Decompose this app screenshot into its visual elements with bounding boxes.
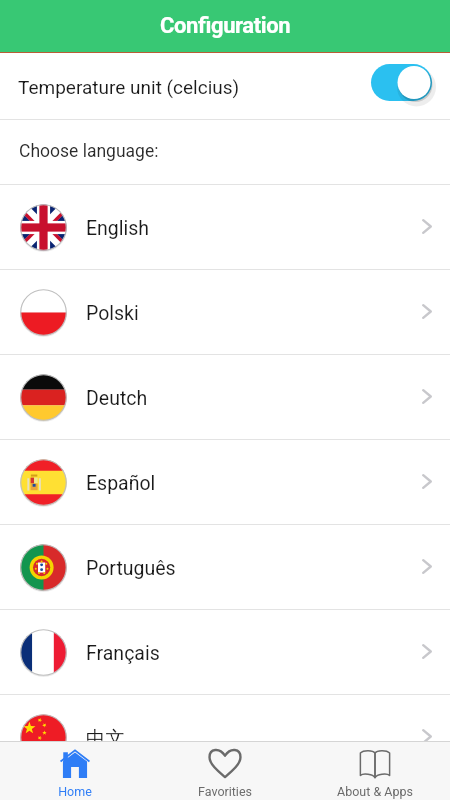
- button[interactable]: Português: [0, 525, 450, 609]
- staticText: 中文: [86, 726, 125, 751]
- staticText: Configuration: [160, 13, 291, 39]
- staticText: Favorities: [198, 784, 252, 799]
- button[interactable]: Español: [0, 440, 450, 524]
- staticText: Português: [86, 557, 176, 580]
- staticText: Temperature unit (celcius): [18, 76, 240, 98]
- staticText: English: [86, 217, 150, 240]
- button[interactable]: Favorities: [150, 742, 300, 800]
- staticText: Français: [86, 642, 160, 665]
- button[interactable]: Deutch: [0, 355, 450, 439]
- staticText: Deutch: [86, 387, 148, 410]
- button[interactable]: Temperature unit toggle: [371, 64, 436, 105]
- button[interactable]: Polski: [0, 270, 450, 354]
- staticText: Polski: [86, 302, 139, 325]
- button[interactable]: English: [0, 185, 450, 269]
- staticText: About & Apps: [337, 784, 413, 799]
- staticText: Español: [86, 472, 156, 495]
- button[interactable]: Français: [0, 610, 450, 694]
- button[interactable]: 中文: [0, 695, 450, 779]
- button[interactable]: Home: [0, 742, 150, 800]
- staticText: Home: [58, 784, 92, 799]
- staticText: Choose language:: [19, 141, 159, 162]
- button[interactable]: Temperature unit (celcius): [0, 53, 450, 119]
- button[interactable]: About & Apps: [300, 742, 450, 800]
